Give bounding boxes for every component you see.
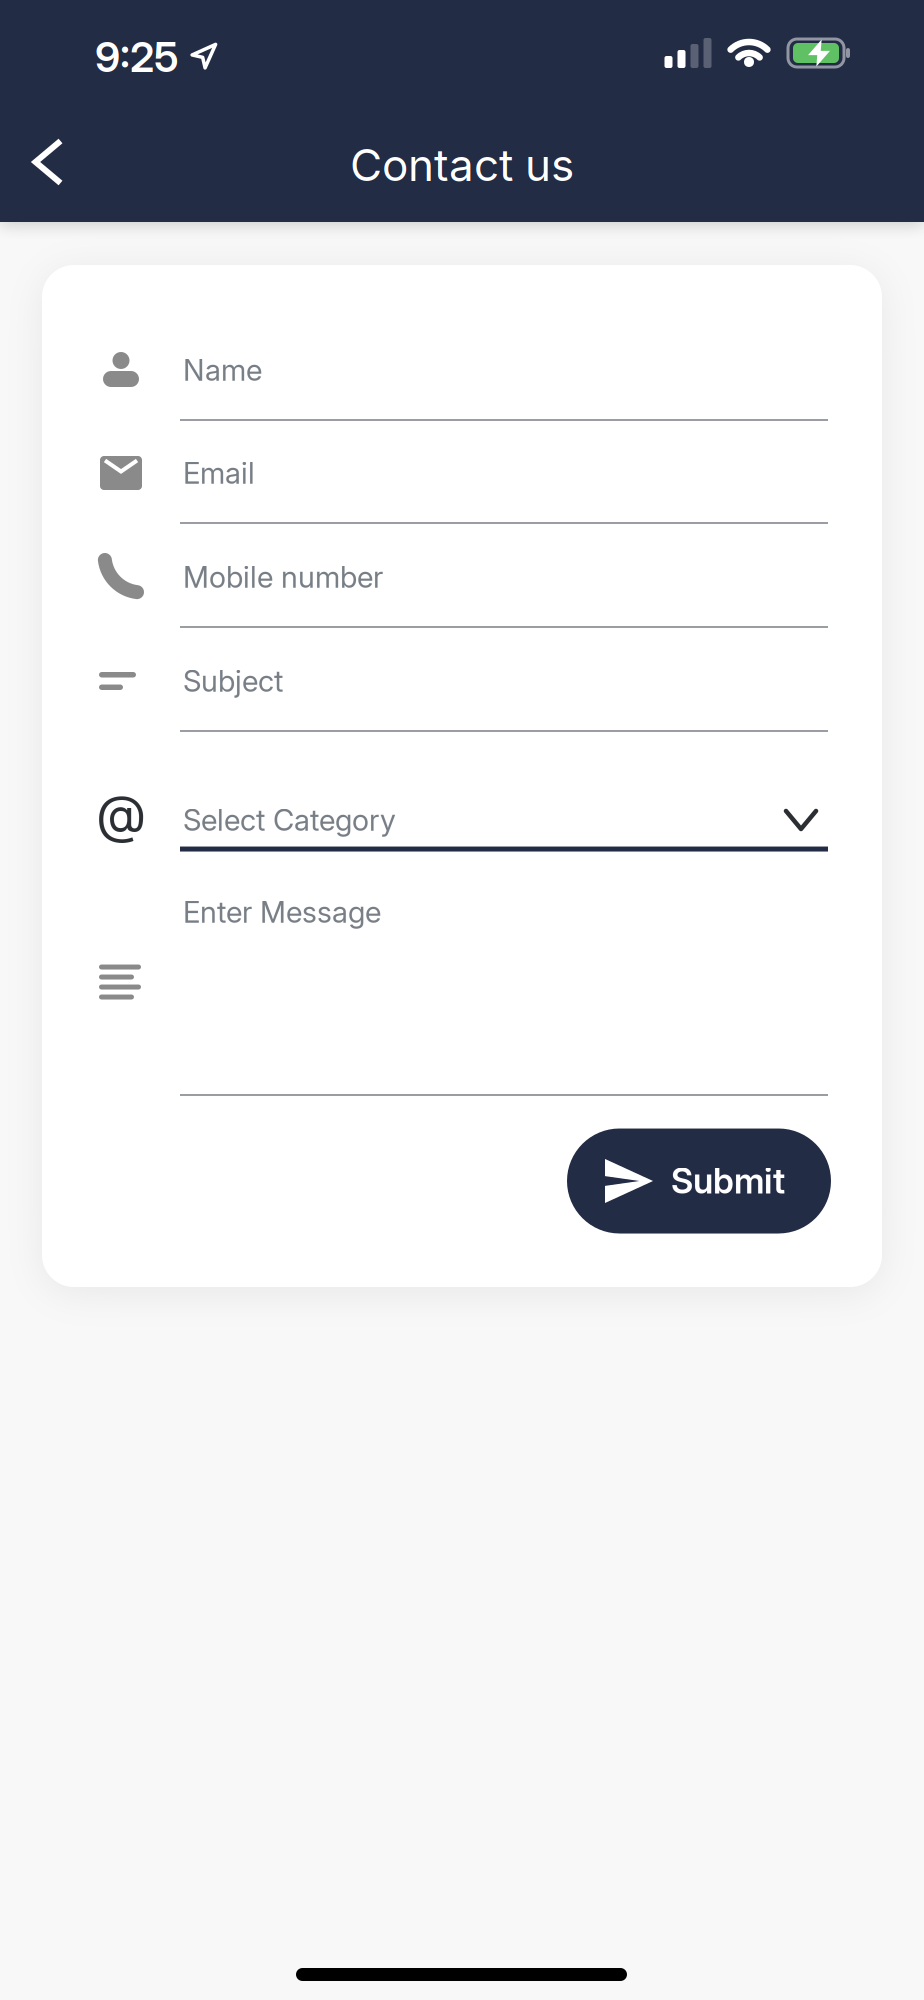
staticText: Mobile number: [183, 560, 383, 594]
button[interactable]: [8, 122, 88, 202]
button[interactable]: Submit: [567, 1128, 831, 1233]
staticText: Submit: [671, 1161, 785, 1201]
staticText: Contact us: [350, 139, 574, 191]
button[interactable]: Email: [42, 420, 882, 524]
staticText: Email: [183, 456, 255, 490]
staticText: Name: [183, 353, 262, 387]
button[interactable]: Mobile number: [42, 524, 882, 628]
staticText: Select Category: [183, 803, 396, 837]
button[interactable]: Enter Message: [42, 855, 882, 1105]
button[interactable]: Subject: [42, 628, 882, 732]
staticText: @: [96, 783, 146, 845]
staticText: 9:25: [95, 33, 179, 81]
staticText: Enter Message: [183, 895, 381, 929]
staticText: Subject: [183, 664, 283, 698]
button[interactable]: Name: [42, 317, 882, 421]
button[interactable]: @: [42, 750, 882, 850]
